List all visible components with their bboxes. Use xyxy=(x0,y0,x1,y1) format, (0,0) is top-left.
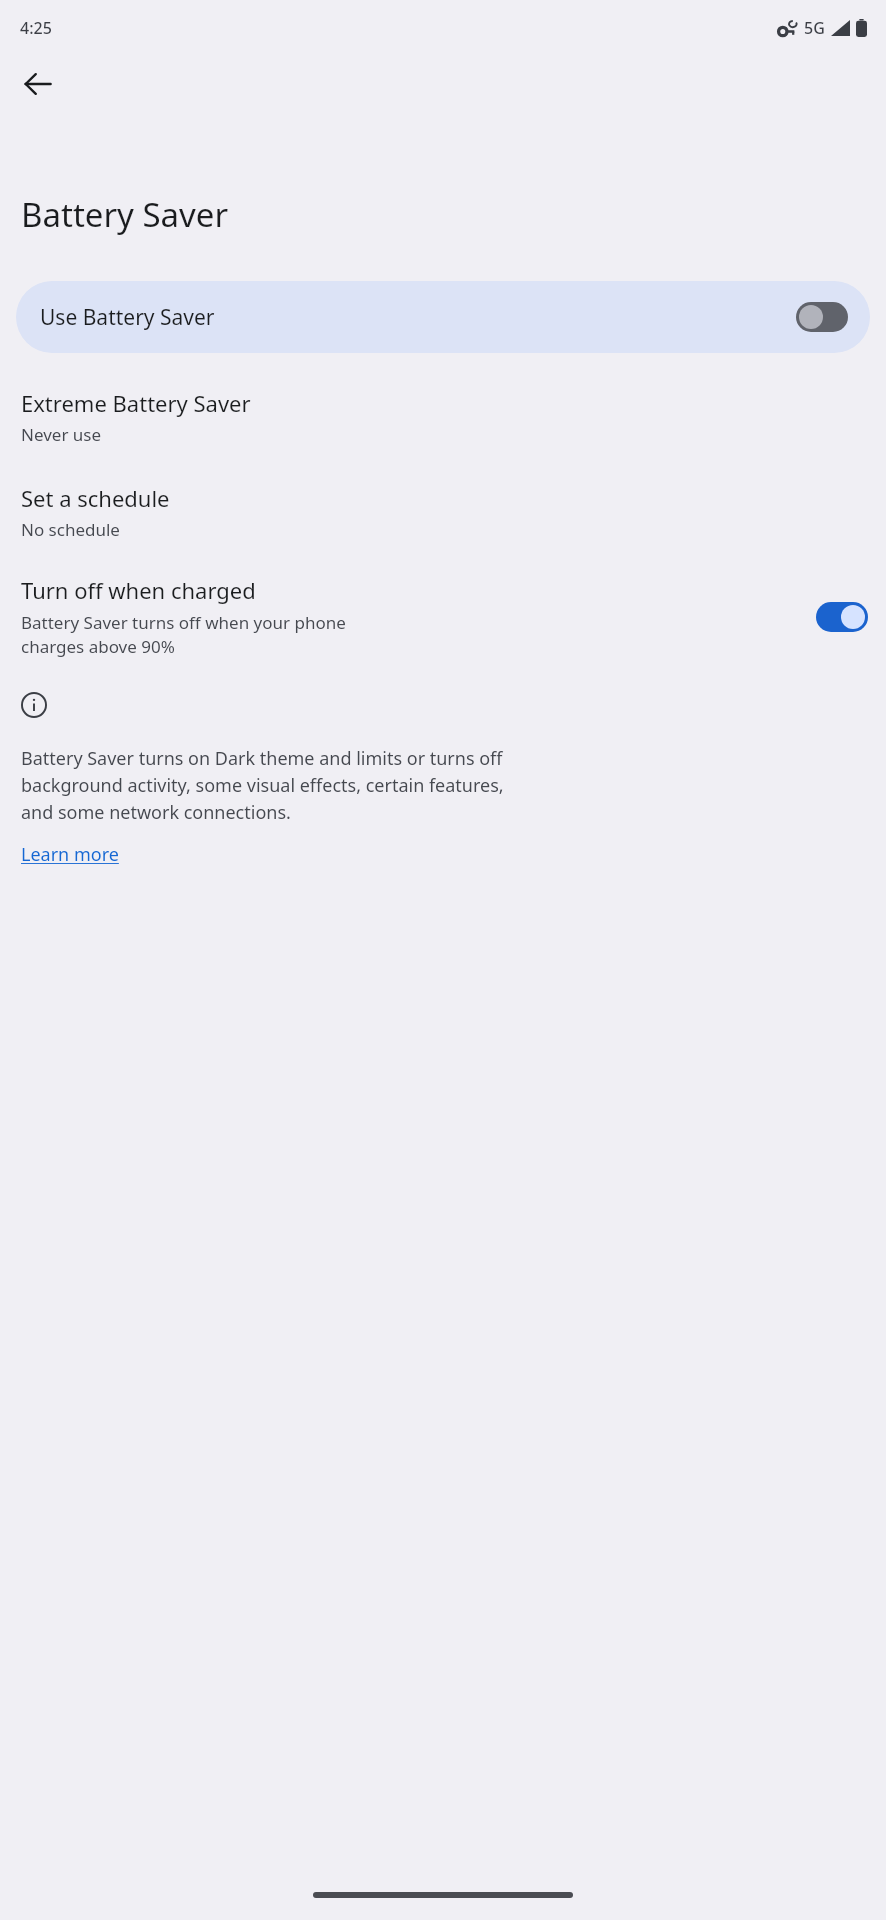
staticText: Battery Saver xyxy=(21,192,229,237)
staticText: Never use xyxy=(21,423,102,446)
staticText: Battery Saver turns off when your phone … xyxy=(21,611,346,658)
staticText: No schedule xyxy=(21,518,120,541)
staticText: Turn off when charged xyxy=(21,575,256,605)
button[interactable]: Learn more xyxy=(21,842,119,867)
button[interactable]: Off xyxy=(796,302,848,332)
button[interactable]: On xyxy=(816,602,868,632)
staticText: Battery Saver turns on Dark theme and li… xyxy=(21,746,504,824)
staticText: Set a schedule xyxy=(21,483,170,513)
staticText: Use Battery Saver xyxy=(40,303,215,332)
button[interactable]: Use Battery Saver xyxy=(16,281,870,353)
button[interactable]: Set a schedule xyxy=(0,479,886,545)
button[interactable]: Turn off when charged xyxy=(0,571,886,662)
staticText: Learn more xyxy=(21,842,119,867)
button[interactable]: Back xyxy=(10,56,66,112)
staticText: Extreme Battery Saver xyxy=(21,388,251,418)
staticText: 5G xyxy=(804,17,825,39)
button[interactable]: Extreme Battery Saver xyxy=(0,384,886,450)
staticText: 4:25 xyxy=(20,17,52,39)
